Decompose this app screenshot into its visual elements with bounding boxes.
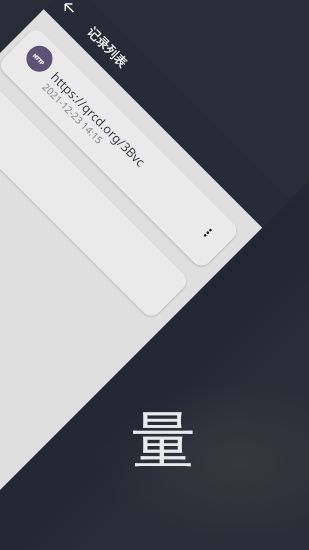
staticText: 记录列表	[84, 24, 131, 71]
button[interactable]: More options	[192, 217, 223, 248]
staticText: https://qrcd.org/3Bvc	[48, 68, 150, 170]
staticText: HTTP	[32, 52, 46, 66]
button[interactable]: HTTP	[0, 76, 191, 320]
staticText: 量	[132, 401, 195, 480]
button[interactable]: HTTP	[0, 25, 241, 270]
staticText: 2021-12-23 14:15	[39, 80, 107, 147]
button[interactable]: Back	[54, 0, 85, 23]
